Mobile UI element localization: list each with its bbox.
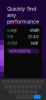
staticText: 21:40 bbox=[28, 34, 39, 39]
button[interactable]: Key bbox=[17, 90, 21, 94]
button[interactable]: Key bbox=[38, 85, 42, 89]
staticText: Quickly find any performance in large li… bbox=[7, 5, 39, 38]
button[interactable]: Key bbox=[25, 90, 29, 94]
button[interactable]: Stage bbox=[4, 27, 42, 33]
button[interactable]: Key bbox=[25, 85, 29, 89]
button[interactable]: Key bbox=[21, 90, 25, 94]
staticText: Now playing bbox=[9, 49, 30, 53]
button[interactable]: Key bbox=[2, 80, 6, 84]
button[interactable]: Key bbox=[17, 85, 21, 89]
staticText: Noir bbox=[31, 41, 39, 46]
button[interactable]: Key bbox=[19, 80, 23, 84]
button[interactable]: Key bbox=[40, 80, 44, 84]
staticText: Artist bbox=[7, 41, 17, 46]
button[interactable]: Set bbox=[4, 33, 42, 40]
staticText: Stage bbox=[7, 28, 17, 33]
button[interactable]: Key bbox=[34, 95, 41, 99]
button[interactable]: Key bbox=[4, 85, 8, 89]
button[interactable]: Now playing bbox=[7, 48, 39, 53]
staticText: Main bbox=[30, 28, 39, 33]
button[interactable]: Key bbox=[21, 85, 25, 89]
button[interactable]: Key bbox=[23, 80, 27, 84]
staticText: Set bbox=[7, 34, 13, 39]
button[interactable]: Key bbox=[6, 80, 10, 84]
button[interactable]: Key bbox=[36, 80, 39, 84]
button[interactable]: Artist bbox=[4, 40, 42, 46]
